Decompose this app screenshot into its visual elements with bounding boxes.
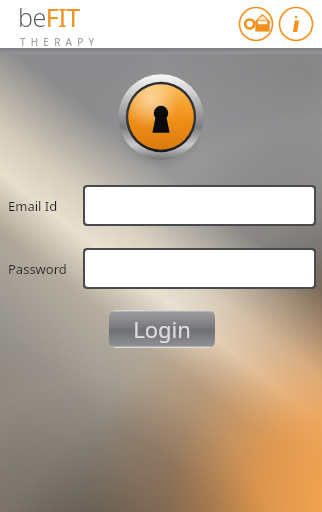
button[interactable]: Secure login — [116, 72, 206, 162]
button[interactable] — [85, 187, 314, 224]
button[interactable] — [85, 250, 314, 287]
staticText: Email Id — [8, 197, 58, 215]
button[interactable]: Login — [109, 310, 215, 348]
staticText: THERAPY — [20, 35, 100, 48]
staticText: beFIT — [18, 0, 80, 34]
staticText: Password — [8, 260, 67, 278]
button[interactable]: Contact us — [236, 4, 276, 44]
staticText: Login — [133, 314, 191, 344]
button[interactable]: Information — [276, 4, 316, 44]
